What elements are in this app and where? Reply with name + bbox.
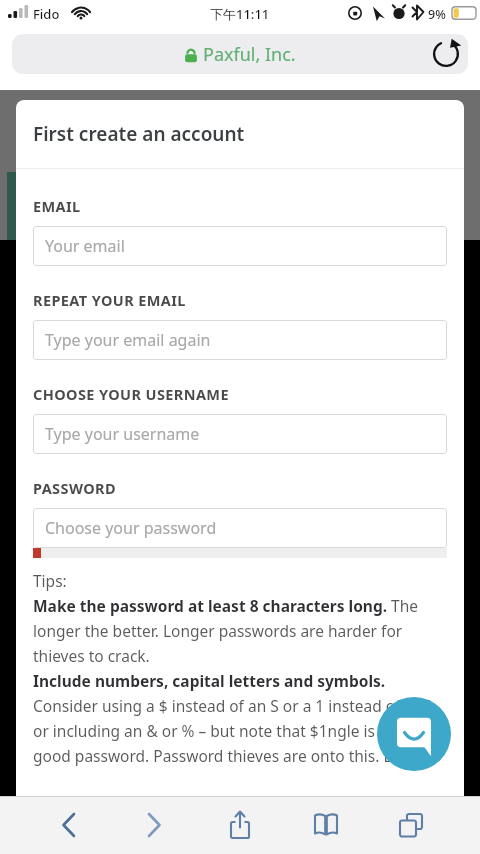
staticText: REPEAT YOUR EMAIL — [33, 290, 186, 310]
button[interactable]: Open chat — [377, 697, 451, 771]
button[interactable]: Share — [217, 802, 263, 848]
button[interactable]: Type your username — [33, 414, 447, 454]
staticText: 下午11:11 — [210, 5, 270, 23]
staticText: First create an account — [33, 121, 245, 147]
button[interactable]: Bookmarks — [303, 802, 349, 848]
button[interactable]: Your email — [33, 226, 447, 266]
staticText: 9% — [428, 6, 446, 23]
staticText: Fido — [33, 5, 60, 23]
staticText: CHOOSE YOUR USERNAME — [33, 384, 229, 404]
button[interactable]: Type your email again — [33, 320, 447, 360]
staticText: Tips: Make the password at least 8 chara… — [33, 570, 447, 766]
button[interactable] — [12, 34, 468, 74]
staticText: Paxful, Inc. — [203, 42, 296, 67]
button[interactable]: Forward — [131, 802, 177, 848]
button[interactable]: Back — [46, 802, 92, 848]
button[interactable]: Tabs — [388, 802, 434, 848]
staticText: Choose your password — [45, 517, 217, 539]
staticText: Your email — [45, 235, 125, 257]
staticText: EMAIL — [33, 196, 81, 216]
staticText: PASSWORD — [33, 478, 116, 498]
staticText: Type your username — [45, 423, 200, 445]
button[interactable]: Choose your password — [33, 508, 447, 548]
staticText: Type your email again — [45, 329, 211, 351]
button[interactable]: Reload — [428, 36, 464, 72]
